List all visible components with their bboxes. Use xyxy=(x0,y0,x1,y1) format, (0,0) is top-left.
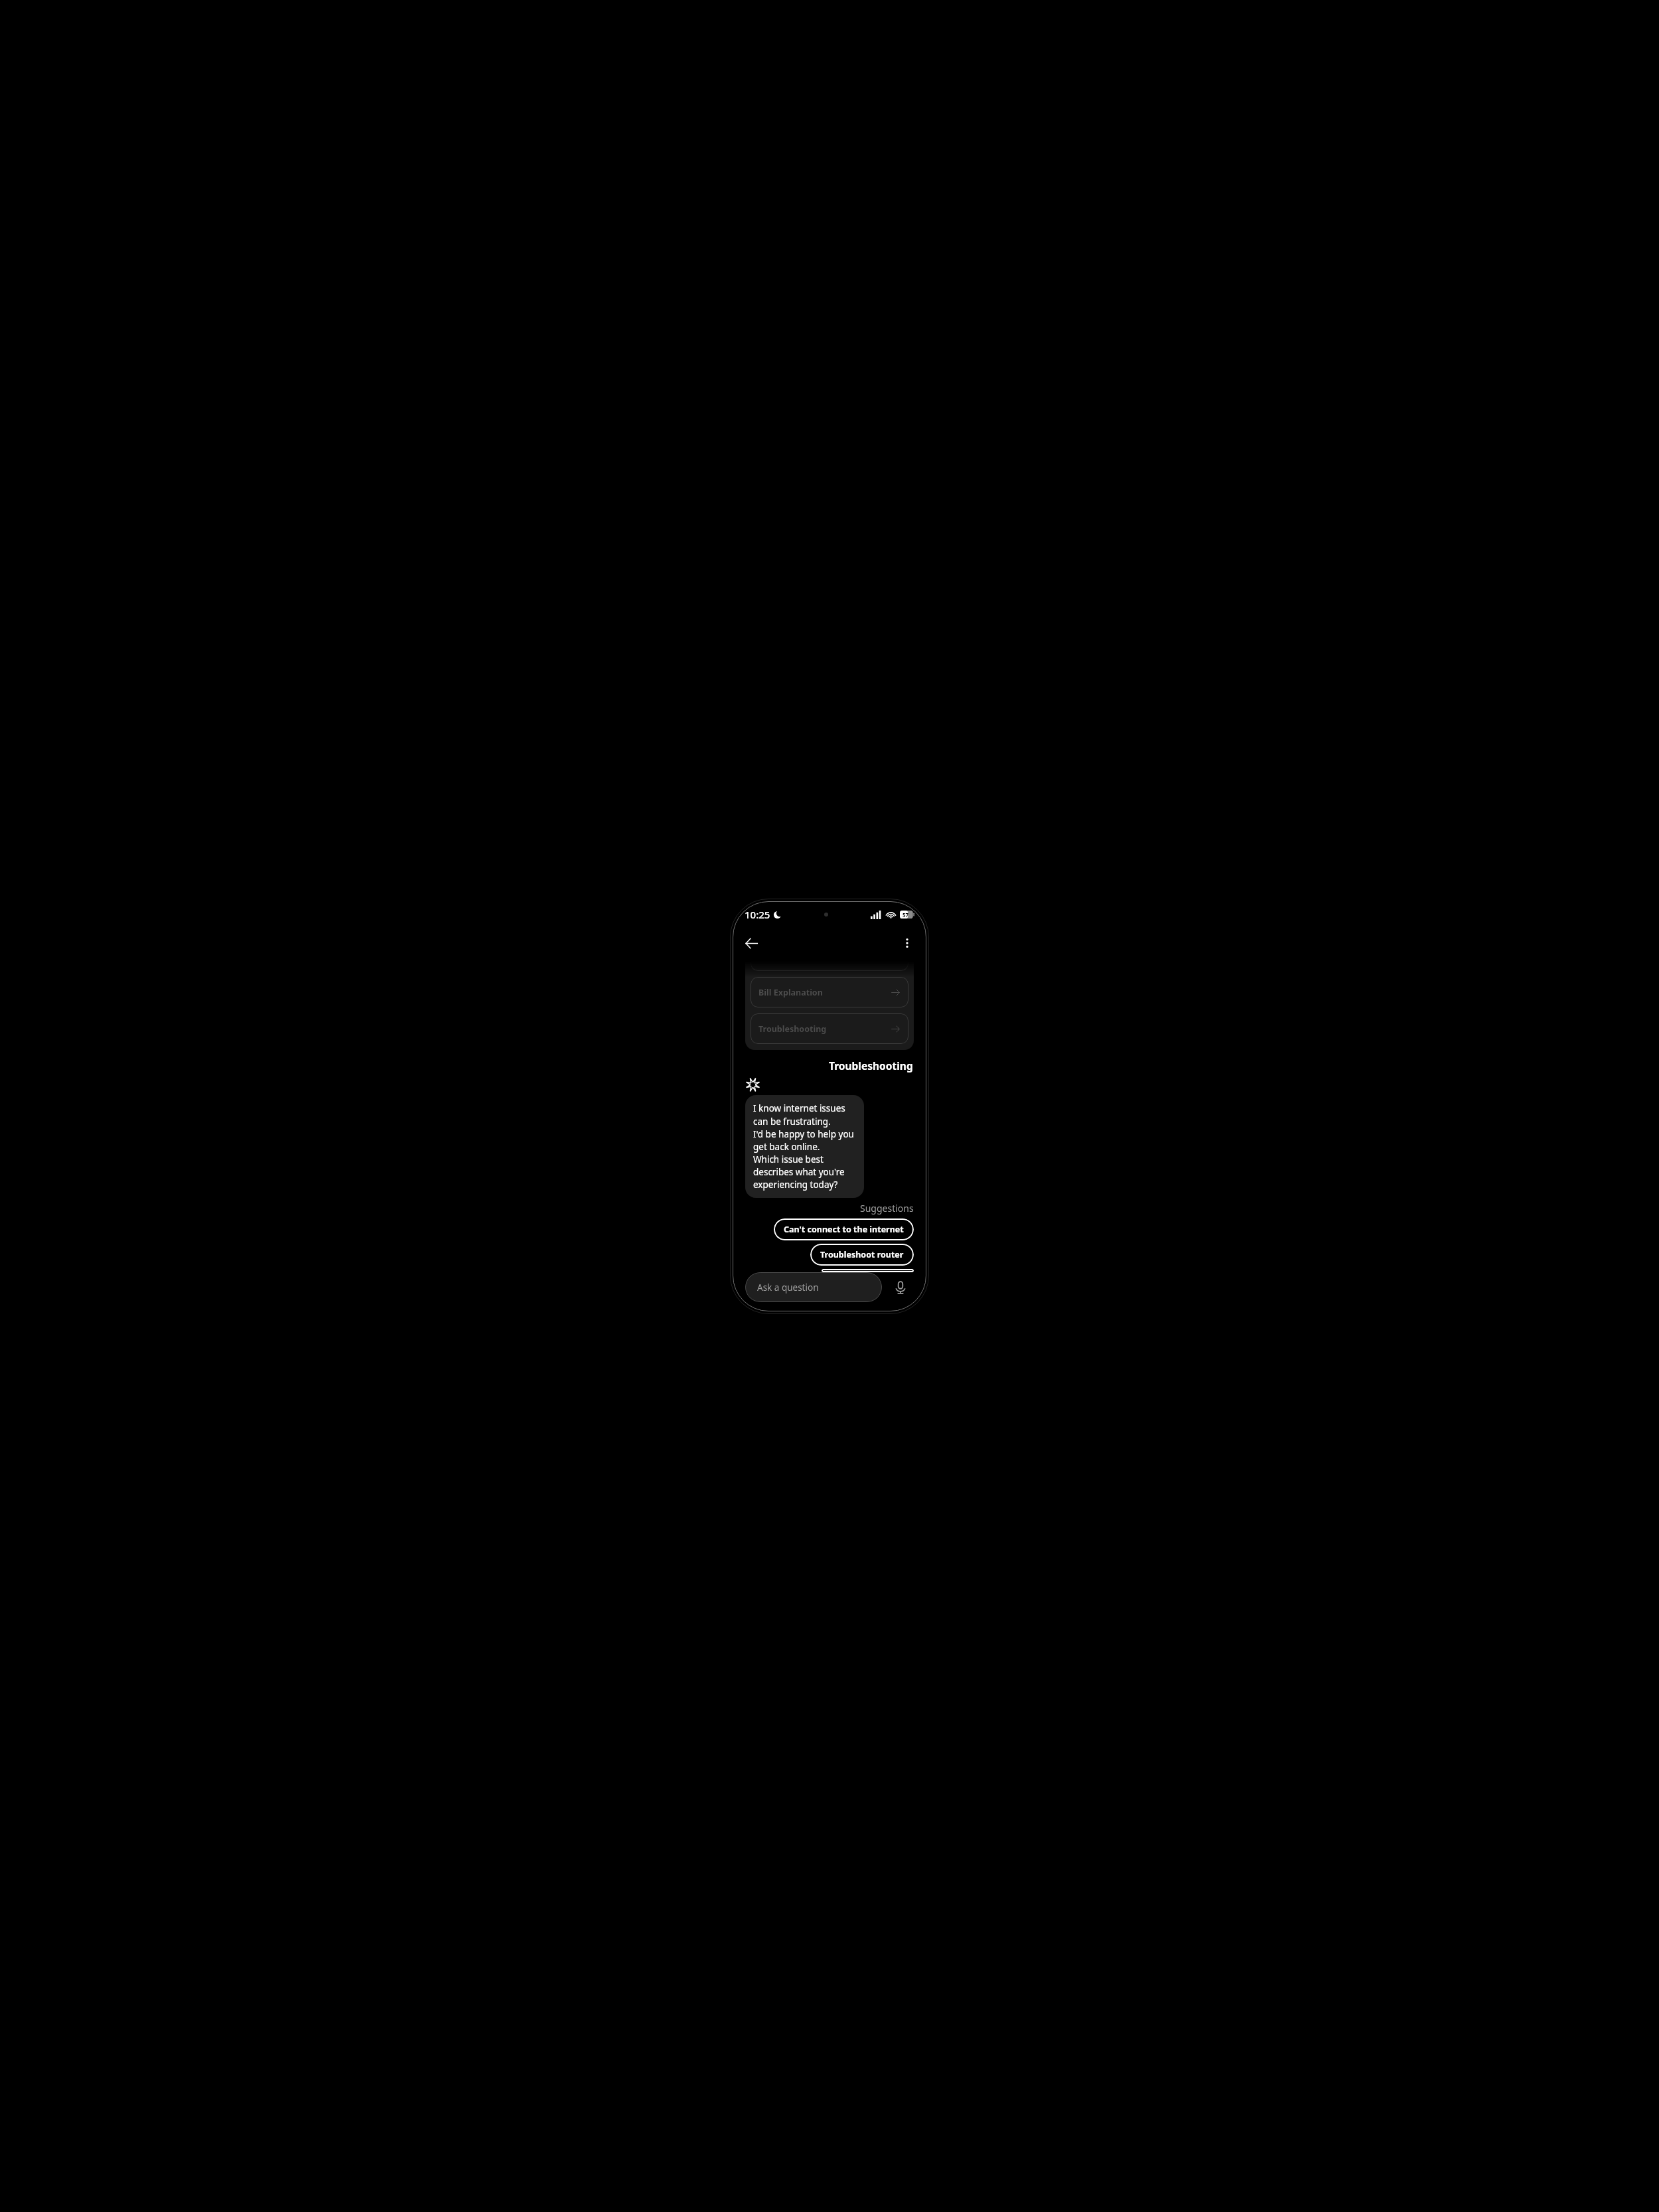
staticText: Bill Explanation xyxy=(758,987,823,998)
button[interactable] xyxy=(751,962,908,971)
staticText: Troubleshoot router xyxy=(820,1249,904,1260)
staticText: Troubleshoot wifi xyxy=(831,1269,904,1272)
staticText: 10:25 xyxy=(745,908,770,921)
staticText: Troubleshooting xyxy=(758,1023,827,1035)
button[interactable]: Bill Explanation xyxy=(751,977,908,1007)
staticText: 57 xyxy=(902,911,909,919)
staticText: I know internet issues can be frustratin… xyxy=(753,1102,856,1191)
button[interactable]: Troubleshoot wifi xyxy=(822,1269,914,1272)
button[interactable]: More options xyxy=(895,930,920,956)
button[interactable]: Troubleshoot router xyxy=(810,1244,914,1266)
button[interactable]: Can't connect to the internet xyxy=(774,1218,914,1240)
staticText: Ask a question xyxy=(757,1282,819,1293)
button[interactable]: I know internet issues can be frustratin… xyxy=(745,1095,864,1198)
button[interactable]: Troubleshooting xyxy=(751,1013,908,1044)
staticText: Can't connect to the internet xyxy=(784,1224,904,1235)
button[interactable]: Ask a question xyxy=(745,1272,882,1302)
staticText: Suggestions xyxy=(860,1202,914,1215)
button[interactable]: Voice input xyxy=(887,1274,914,1301)
button[interactable]: Troubleshooting xyxy=(829,1059,913,1072)
button[interactable]: Back xyxy=(738,930,764,956)
